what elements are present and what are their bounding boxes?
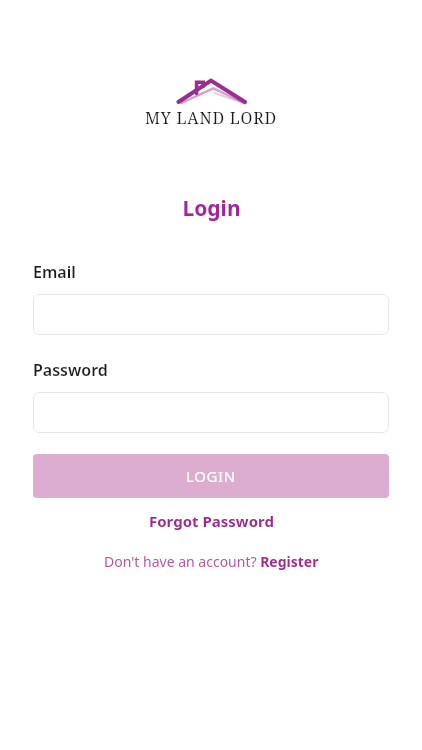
staticText: Login xyxy=(182,194,241,223)
staticText: LOGIN xyxy=(186,466,236,486)
staticText: Forgot Password xyxy=(149,511,274,531)
button[interactable]: Forgot Password xyxy=(139,508,284,534)
staticText: Password xyxy=(33,359,108,381)
staticText: MY LAND LORD xyxy=(145,107,277,129)
staticText: Don't have an account? Register xyxy=(104,552,319,571)
button[interactable] xyxy=(33,392,389,433)
button[interactable]: LOGIN xyxy=(33,454,389,498)
other: My Land Lord logo xyxy=(174,78,248,104)
button[interactable] xyxy=(33,294,389,335)
staticText: Email xyxy=(33,261,76,283)
button[interactable]: Don't have an account? Register xyxy=(94,549,329,574)
